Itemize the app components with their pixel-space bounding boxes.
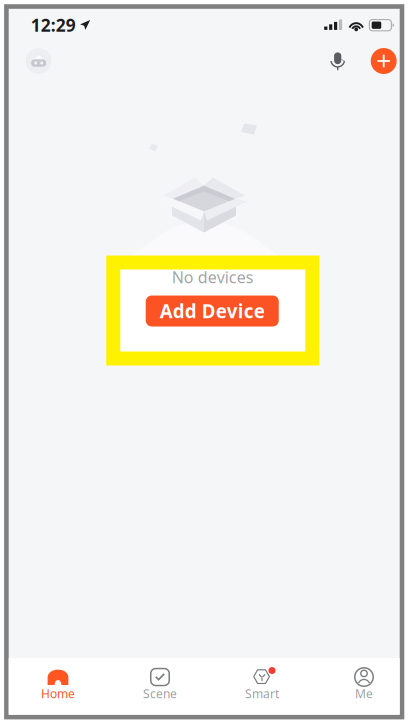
staticText: Scene	[143, 685, 177, 701]
button[interactable]: Home	[13, 653, 103, 706]
button[interactable]: Add Device	[146, 295, 279, 326]
staticText: Add Device	[160, 299, 265, 323]
staticText: 12:29	[31, 13, 76, 36]
button[interactable]: Scene	[115, 653, 205, 706]
staticText: No devices	[172, 266, 254, 288]
button[interactable]: Add device	[364, 41, 404, 81]
button[interactable]: Smart	[217, 653, 307, 706]
button[interactable]: Home	[18, 40, 60, 82]
staticText: Me	[355, 685, 373, 701]
staticText: Smart	[245, 685, 279, 701]
button[interactable]: Voice assistant	[321, 44, 355, 78]
staticText: Home	[41, 685, 75, 701]
button[interactable]: Me	[319, 653, 408, 706]
